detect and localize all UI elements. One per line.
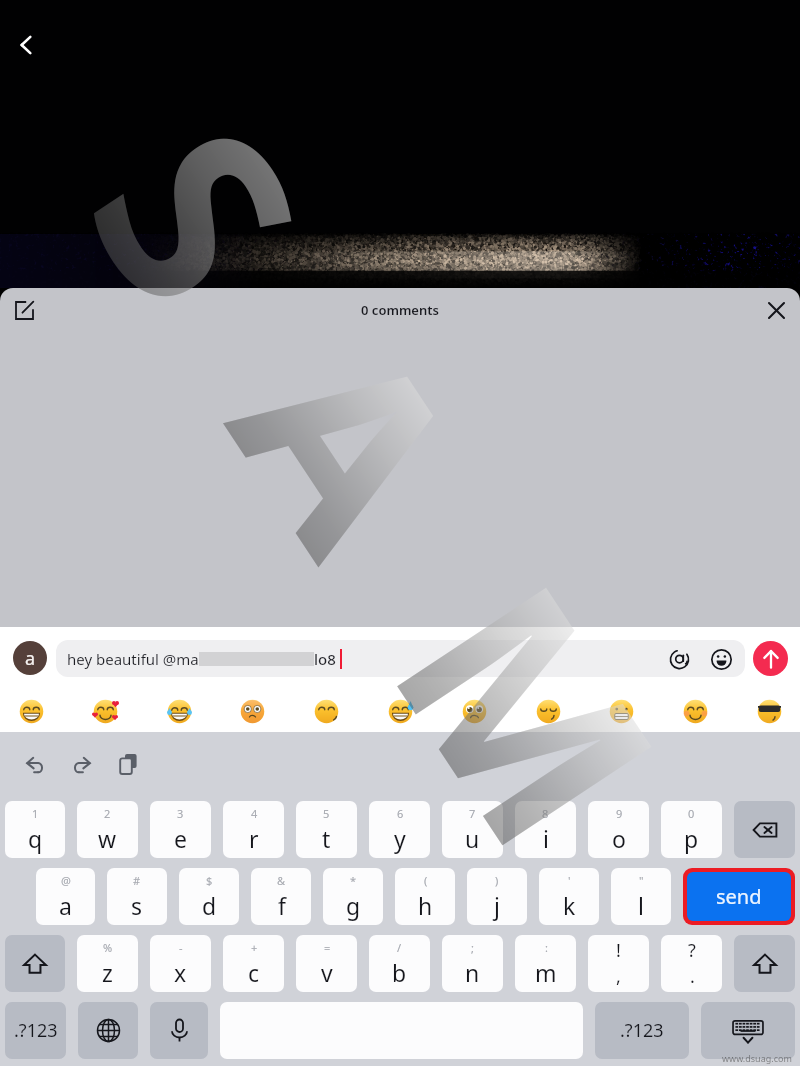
button[interactable]: Shift <box>5 935 65 992</box>
staticText: e <box>174 823 187 854</box>
button[interactable]: Emoji reaction <box>755 697 783 725</box>
staticText: g <box>346 890 361 921</box>
staticText: ; <box>471 940 474 955</box>
button[interactable]: + <box>223 935 284 992</box>
staticText: h <box>418 890 433 921</box>
button[interactable]: 8 <box>515 801 576 858</box>
button[interactable]: ) <box>467 868 527 925</box>
staticText: / <box>397 940 402 955</box>
staticText: k <box>563 890 576 921</box>
staticText: - <box>179 940 183 955</box>
button[interactable]: 5 <box>296 801 357 858</box>
staticText: q <box>28 823 43 854</box>
staticText: 4 <box>251 806 258 821</box>
button[interactable]: Emoji reaction <box>607 697 635 725</box>
button[interactable]: 2 <box>77 801 138 858</box>
staticText: 8 <box>542 806 549 821</box>
button[interactable]: & <box>251 868 311 925</box>
button[interactable]: 0 <box>661 801 722 858</box>
button[interactable]: Emoji reaction <box>238 697 266 725</box>
staticText: " <box>639 873 644 888</box>
staticText: w <box>98 823 117 854</box>
staticText: m <box>535 957 557 988</box>
button[interactable]: Compose comment <box>0 288 48 332</box>
button[interactable]: ; <box>442 935 503 992</box>
staticText: ) <box>495 873 499 888</box>
staticText: x <box>174 957 187 988</box>
button[interactable]: .?123 <box>595 1002 689 1059</box>
button[interactable]: 9 <box>588 801 649 858</box>
staticText: i <box>543 823 549 854</box>
button[interactable]: hey beautiful @ma <box>56 640 745 677</box>
staticText: f <box>278 890 286 921</box>
button[interactable]: Change language <box>78 1002 138 1059</box>
staticText: 0 comments <box>48 301 752 319</box>
button[interactable]: " <box>611 868 671 925</box>
button[interactable]: ' <box>539 868 599 925</box>
button[interactable]: $ <box>179 868 239 925</box>
staticText: j <box>494 890 500 921</box>
button[interactable]: : <box>515 935 576 992</box>
button[interactable]: Shift <box>734 935 795 992</box>
staticText: & <box>277 873 286 888</box>
staticText: d <box>202 890 217 921</box>
button[interactable]: Mention someone <box>666 646 692 672</box>
button[interactable]: * <box>323 868 383 925</box>
button[interactable]: Backspace <box>734 801 795 858</box>
staticText: r <box>249 823 259 854</box>
staticText: 3 <box>177 806 184 821</box>
button[interactable]: send <box>687 872 791 921</box>
staticText: .?123 <box>14 1018 58 1043</box>
staticText: hey beautiful @ma <box>67 649 199 669</box>
staticText: 1 <box>32 806 39 821</box>
button[interactable]: ? <box>661 935 722 992</box>
button[interactable]: Emoji reaction <box>681 697 709 725</box>
staticText: p <box>684 823 699 854</box>
staticText: 5 <box>323 806 330 821</box>
button[interactable]: 7 <box>442 801 503 858</box>
button[interactable]: .?123 <box>5 1002 66 1059</box>
button[interactable]: Voice input <box>150 1002 208 1059</box>
button[interactable]: 3 <box>150 801 211 858</box>
button[interactable]: 1 <box>5 801 65 858</box>
button[interactable]: 4 <box>223 801 284 858</box>
staticText: * <box>350 873 357 888</box>
button[interactable]: Emoji reaction <box>17 697 45 725</box>
button[interactable]: Emoji reaction <box>534 697 562 725</box>
staticText: u <box>465 823 480 854</box>
staticText: z <box>102 957 113 988</box>
button[interactable]: Undo <box>17 746 53 782</box>
staticText: # <box>133 873 141 888</box>
button[interactable]: ( <box>395 868 455 925</box>
button[interactable]: @ <box>36 868 95 925</box>
button[interactable]: Emoji keyboard <box>708 646 734 672</box>
staticText: : <box>545 940 548 955</box>
button[interactable]: 6 <box>369 801 430 858</box>
button[interactable]: = <box>296 935 357 992</box>
staticText: 0 <box>688 806 695 821</box>
staticText: 7 <box>469 806 476 821</box>
staticText: c <box>248 957 260 988</box>
button[interactable]: Clipboard <box>111 746 147 782</box>
button[interactable]: Redo <box>64 746 100 782</box>
button[interactable]: % <box>77 935 138 992</box>
button[interactable]: Emoji reaction <box>386 697 414 725</box>
button[interactable]: ! <box>588 935 649 992</box>
button[interactable]: Emoji reaction <box>460 697 488 725</box>
staticText: y <box>394 823 406 854</box>
button[interactable]: Emoji reaction <box>91 697 119 725</box>
button[interactable]: Close <box>752 288 800 332</box>
button[interactable]: Back <box>6 25 46 65</box>
button[interactable]: # <box>107 868 167 925</box>
button[interactable]: Send <box>745 627 795 689</box>
staticText: send <box>716 883 762 910</box>
button[interactable]: Hide keyboard <box>701 1002 795 1059</box>
button[interactable]: - <box>150 935 211 992</box>
button[interactable]: Emoji reaction <box>165 697 193 725</box>
staticText: t <box>322 823 331 854</box>
button[interactable]: Emoji reaction <box>312 697 340 725</box>
staticText: ( <box>424 873 428 888</box>
button[interactable]: / <box>369 935 430 992</box>
